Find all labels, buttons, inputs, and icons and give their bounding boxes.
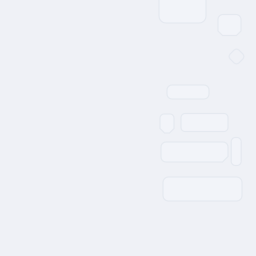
button[interactable]: Attachment	[160, 114, 174, 133]
button[interactable]: Message	[181, 113, 228, 131]
button[interactable]: Attachment	[231, 137, 241, 165]
button[interactable]: Reaction	[230, 50, 243, 63]
button[interactable]: Attachment	[218, 14, 241, 35]
button[interactable]: Message	[167, 85, 209, 99]
